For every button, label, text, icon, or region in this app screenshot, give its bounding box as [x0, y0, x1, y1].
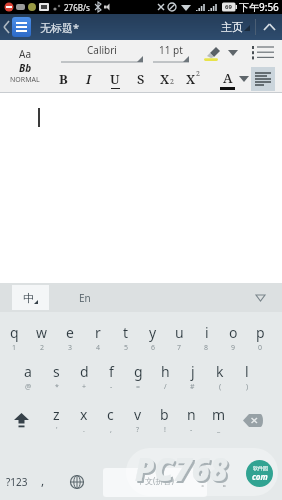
staticText: 4 — [96, 343, 101, 353]
staticText: - — [110, 382, 113, 392]
staticText: ( — [219, 382, 222, 392]
staticText: U — [110, 70, 120, 88]
staticText: ' — [56, 425, 58, 435]
staticText: u — [175, 323, 184, 342]
button[interactable]: , — [34, 452, 52, 500]
staticText: w — [36, 323, 48, 342]
staticText: En — [79, 291, 91, 305]
staticText: 11 pt — [159, 43, 183, 57]
button[interactable]: y — [139, 312, 166, 356]
button[interactable]: 中 — [12, 285, 49, 310]
staticText: 5 — [124, 343, 129, 353]
button[interactable]: c — [97, 400, 124, 452]
staticText: l — [245, 362, 249, 381]
button[interactable]: n — [178, 400, 205, 452]
button[interactable]: 11 pt — [150, 41, 192, 65]
staticText: v — [134, 405, 142, 424]
button[interactable]: ?123 — [0, 452, 34, 500]
button[interactable]: x — [70, 400, 97, 452]
button[interactable]: 中文(拼音) — [103, 468, 207, 497]
button[interactable] — [238, 452, 282, 500]
button[interactable]: s — [42, 356, 70, 400]
button[interactable]: S — [128, 67, 154, 91]
button[interactable]: f — [98, 356, 125, 400]
staticText: ?123 — [6, 475, 28, 489]
staticText: 无标题* — [40, 20, 80, 35]
staticText: X — [160, 70, 170, 88]
staticText: , — [110, 425, 112, 435]
button[interactable]: A — [220, 69, 235, 90]
button[interactable] — [254, 293, 266, 303]
button[interactable] — [251, 67, 275, 91]
staticText: @ — [25, 382, 32, 392]
button[interactable]: m — [205, 400, 232, 452]
button[interactable]: z — [42, 400, 70, 452]
button[interactable]: b — [151, 400, 178, 452]
staticText: # — [190, 382, 195, 392]
button[interactable]: I — [76, 67, 102, 91]
button[interactable]: h — [152, 356, 179, 400]
staticText: NORMAL — [10, 75, 40, 85]
staticText: ) — [246, 382, 249, 392]
button[interactable]: p — [247, 312, 274, 356]
button[interactable]: g — [125, 356, 152, 400]
button[interactable]: En — [62, 283, 108, 312]
staticText: t — [123, 323, 129, 342]
staticText: . — [83, 425, 85, 435]
staticText: 9 — [231, 343, 236, 353]
button[interactable]: Aa — [0, 40, 50, 92]
staticText: z — [53, 405, 60, 424]
button[interactable]: X — [154, 67, 180, 91]
button[interactable] — [250, 42, 278, 64]
button[interactable] — [0, 400, 42, 452]
button[interactable] — [256, 14, 282, 40]
staticText: p — [256, 323, 265, 342]
button[interactable]: q — [0, 312, 28, 356]
button[interactable]: 主页 — [221, 20, 251, 34]
staticText: 2 — [40, 343, 45, 353]
staticText: d — [80, 362, 89, 381]
staticText: n — [187, 405, 196, 424]
staticText: _ — [217, 425, 221, 435]
button[interactable]: Calibri — [58, 41, 146, 65]
staticText: j — [191, 362, 195, 381]
staticText: ! — [164, 425, 166, 435]
button[interactable]: 。 — [216, 452, 238, 500]
staticText: Calibri — [87, 43, 117, 57]
button[interactable]: j — [179, 356, 206, 400]
button[interactable]: d — [70, 356, 98, 400]
button[interactable]: o — [220, 312, 247, 356]
button[interactable] — [0, 14, 12, 40]
button[interactable] — [232, 400, 274, 452]
button[interactable]: k — [206, 356, 233, 400]
button[interactable] — [62, 452, 92, 500]
staticText: = — [136, 382, 141, 392]
staticText: 主页 — [221, 20, 243, 34]
staticText: 69 — [225, 3, 232, 11]
staticText: c — [107, 405, 114, 424]
button[interactable]: a — [14, 356, 42, 400]
button[interactable]: 软件园 — [246, 460, 273, 487]
button[interactable] — [226, 43, 240, 63]
button[interactable]: w — [28, 312, 56, 356]
button[interactable]: U — [102, 67, 128, 91]
staticText: g — [134, 362, 143, 381]
staticText: 2 — [196, 69, 200, 79]
button[interactable]: v — [124, 400, 151, 452]
button[interactable]: t — [112, 312, 139, 356]
staticText: PC768 — [135, 448, 228, 490]
button[interactable]: X — [180, 67, 206, 91]
button[interactable]: r — [84, 312, 112, 356]
staticText: 中 — [23, 291, 34, 305]
button[interactable]: u — [166, 312, 193, 356]
button[interactable]: B — [50, 67, 76, 91]
button[interactable] — [200, 42, 224, 64]
button[interactable] — [12, 17, 31, 37]
button[interactable]: i — [193, 312, 220, 356]
button[interactable]: e — [56, 312, 84, 356]
button[interactable] — [237, 69, 251, 89]
button[interactable]: l — [233, 356, 260, 400]
staticText: e — [66, 323, 74, 342]
staticText: 6 — [151, 343, 156, 353]
staticText: f — [109, 362, 114, 381]
